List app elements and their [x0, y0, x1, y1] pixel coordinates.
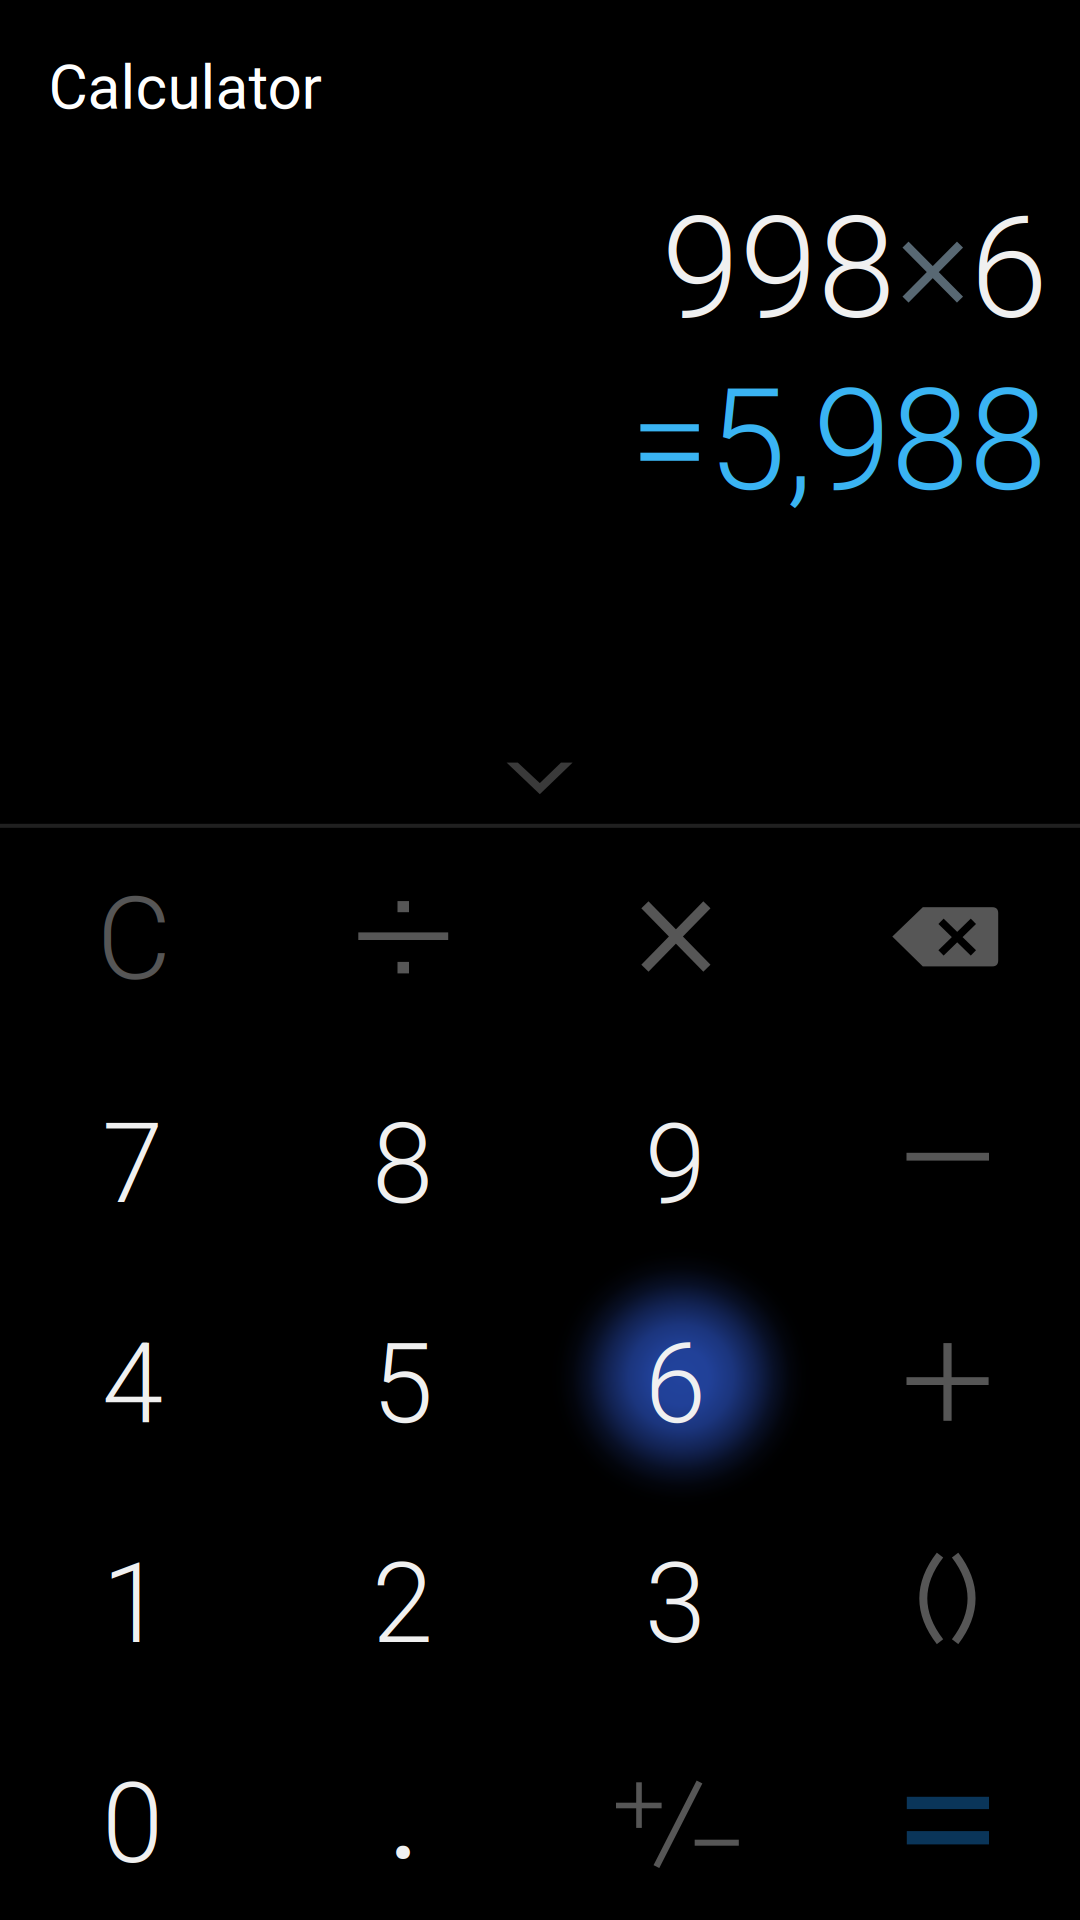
button[interactable]: 1 [0, 1494, 267, 1714]
staticText: 6 [970, 186, 1048, 351]
staticText: 8 [372, 1100, 433, 1229]
button[interactable]: Add [812, 1312, 1080, 1532]
staticText: 6 [645, 1320, 706, 1449]
button[interactable]: Parentheses [812, 1532, 1080, 1752]
staticText: 9 [645, 1100, 706, 1229]
button[interactable]: Subtract [812, 1092, 1080, 1312]
button[interactable]: C [0, 829, 269, 1049]
staticText: 1 [102, 1540, 163, 1669]
button[interactable]: Divide [268, 869, 538, 1089]
staticText: Calculator [48, 53, 321, 124]
button[interactable]: 8 [268, 1055, 538, 1275]
button[interactable]: 5 [268, 1275, 538, 1495]
button[interactable]: 0 [0, 1714, 267, 1920]
staticText: C [97, 872, 171, 1007]
button[interactable]: 7 [0, 1055, 267, 1275]
button[interactable]: Toggle sign [540, 1752, 810, 1920]
button[interactable]: Multiply [540, 869, 810, 1089]
button[interactable]: 9 [540, 1055, 810, 1275]
staticText: 5 [372, 1320, 433, 1449]
button[interactable]: 6 [540, 1275, 810, 1495]
staticText: 7 [102, 1100, 163, 1229]
button[interactable]: Delete [812, 869, 1080, 1089]
button[interactable]: Show history [400, 740, 680, 820]
staticText: 998 [661, 186, 895, 351]
staticText: 4 [102, 1320, 163, 1449]
staticText: 0 [102, 1760, 163, 1889]
button[interactable]: 4 [0, 1275, 267, 1495]
staticText: 2 [372, 1540, 433, 1669]
button[interactable]: 3 [540, 1494, 810, 1714]
button[interactable]: 2 [268, 1494, 538, 1714]
button[interactable]: Equals [812, 1752, 1080, 1920]
button[interactable]: . [269, 1706, 539, 1920]
staticText: 3 [645, 1540, 706, 1669]
staticText: 5,988 [708, 359, 1047, 523]
staticText: . [388, 1744, 420, 1888]
